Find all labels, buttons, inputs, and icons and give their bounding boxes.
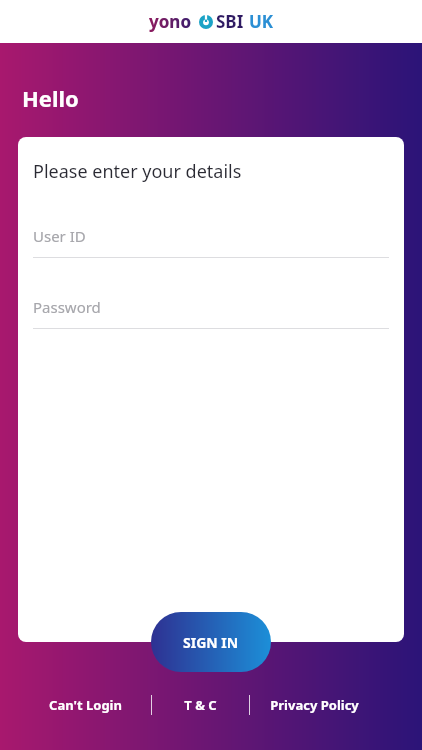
staticText: Privacy Policy xyxy=(270,696,359,714)
staticText: yono xyxy=(149,10,192,33)
button[interactable]: Password xyxy=(33,297,389,329)
staticText: Please enter your details xyxy=(33,159,242,184)
staticText: Can't Login xyxy=(49,696,122,714)
button[interactable]: User ID xyxy=(33,226,389,258)
button[interactable]: Can't Login xyxy=(47,692,124,718)
button[interactable]: Privacy Policy xyxy=(268,692,361,718)
other: SBI logo xyxy=(199,15,213,29)
button[interactable]: SIGN IN xyxy=(151,612,271,672)
staticText: UK xyxy=(249,10,274,33)
staticText: SBI xyxy=(216,10,244,33)
staticText: Password xyxy=(33,297,101,317)
staticText: Hello xyxy=(22,83,79,113)
button[interactable]: T & C xyxy=(182,692,219,718)
staticText: T & C xyxy=(184,696,217,714)
staticText: User ID xyxy=(33,226,86,246)
staticText: SIGN IN xyxy=(183,633,239,652)
